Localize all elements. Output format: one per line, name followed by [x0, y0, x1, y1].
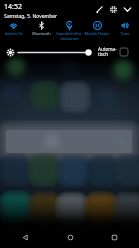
button[interactable]: Settings — [106, 2, 120, 16]
button[interactable]: Home — [50, 226, 90, 248]
button[interactable]: Edit quick settings — [92, 2, 106, 16]
button[interactable]: Mobile Daten — [83, 20, 111, 36]
staticText: Tone — [120, 31, 130, 36]
button[interactable]: Collapse panel — [120, 2, 134, 16]
staticText: 14:52 — [4, 2, 22, 12]
staticText: devolo-flc — [4, 31, 23, 36]
button[interactable]: Bluetooth — [27, 20, 55, 36]
staticText: Mobile Daten — [84, 31, 110, 36]
button[interactable]: Tone — [111, 20, 139, 36]
button[interactable]: devolo-flc — [0, 20, 27, 36]
staticText: Bluetooth — [32, 31, 51, 36]
button[interactable]: Brightness slider — [16, 44, 94, 60]
staticText: Standortinfor- mationen — [56, 31, 83, 41]
staticText: Samstag, 5. November — [4, 13, 58, 20]
button[interactable]: Recent apps — [94, 226, 134, 248]
staticText: Automa- tisch — [98, 46, 117, 58]
button[interactable]: Back — [5, 226, 45, 248]
button[interactable]: Standortinfor- mationen — [55, 20, 83, 41]
button[interactable]: Automatic brightness — [118, 46, 130, 58]
